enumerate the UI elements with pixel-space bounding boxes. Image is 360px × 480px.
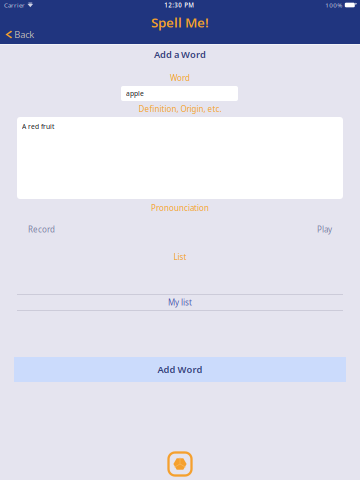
- staticText: Add Word: [157, 363, 202, 376]
- button[interactable]: Add Word: [14, 357, 346, 382]
- staticText: apple: [126, 89, 144, 98]
- button[interactable]: Play: [317, 224, 332, 235]
- staticText: Back: [14, 28, 34, 41]
- button[interactable]: Back: [0, 30, 360, 39]
- staticText: 100%: [325, 1, 342, 9]
- staticText: Record: [28, 224, 55, 235]
- staticText: My list: [168, 297, 192, 308]
- staticText: List: [173, 252, 186, 262]
- staticText: Play: [317, 224, 332, 235]
- staticText: 12:30 PM: [164, 1, 194, 9]
- staticText: Word: [170, 73, 190, 83]
- staticText: Definition, Origin, etc.: [138, 104, 221, 114]
- staticText: Spell Me!: [151, 13, 209, 31]
- staticText: Carrier: [4, 1, 25, 9]
- button[interactable]: Spell Me app: [168, 452, 192, 476]
- staticText: Add a Word: [154, 48, 206, 61]
- button[interactable]: My list: [17, 295, 343, 310]
- button[interactable]: Record: [28, 224, 55, 235]
- staticText: A red fruit: [22, 122, 54, 131]
- staticText: Pronounciation: [151, 203, 209, 213]
